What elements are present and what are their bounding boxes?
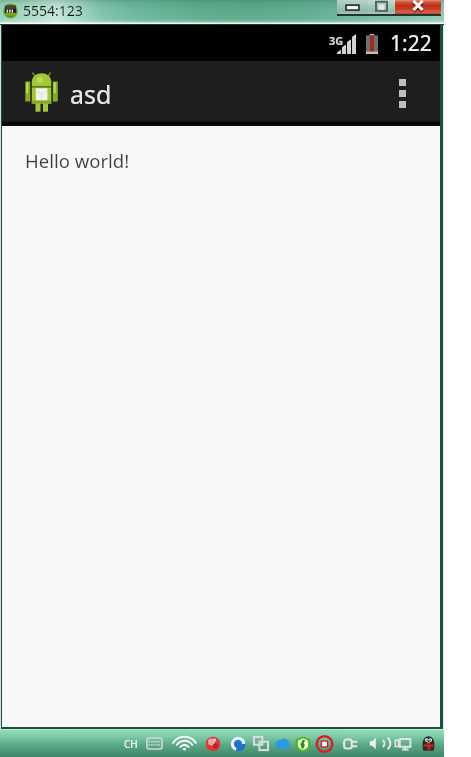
- button[interactable]: Cloud: [274, 736, 291, 752]
- button[interactable]: More options: [384, 61, 420, 126]
- button[interactable]: Security: [295, 736, 311, 752]
- button[interactable]: Power: [343, 736, 358, 752]
- button[interactable]: Close: [395, 0, 441, 15]
- button[interactable]: Volume: [369, 736, 386, 751]
- staticText: 5554:123: [23, 1, 83, 20]
- button[interactable]: QQ: [421, 735, 436, 752]
- staticText: 1:22: [390, 29, 432, 58]
- button[interactable]: Browser: [230, 736, 246, 752]
- button[interactable]: Display: [395, 736, 411, 751]
- button[interactable]: Windows: [253, 736, 269, 751]
- button[interactable]: CH: [124, 737, 138, 751]
- staticText: asd: [70, 77, 112, 111]
- button[interactable]: Wi-Fi: [177, 736, 192, 751]
- button[interactable]: Maximize: [368, 0, 395, 15]
- staticText: 3G: [329, 33, 344, 48]
- staticText: Hello world!: [25, 148, 130, 173]
- button[interactable]: Guard: [316, 736, 333, 752]
- button[interactable]: Minimize: [337, 0, 368, 15]
- button[interactable]: Network: [205, 736, 221, 752]
- button[interactable]: Keyboard: [147, 738, 162, 749]
